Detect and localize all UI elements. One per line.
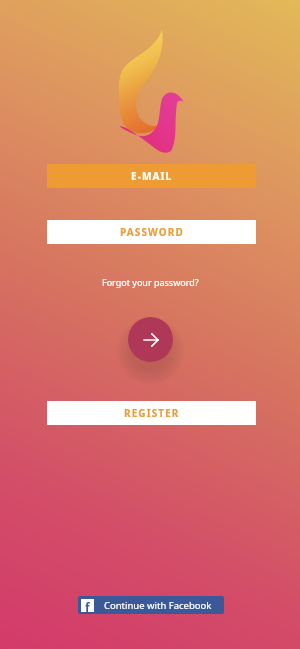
button[interactable]: REGISTER	[47, 401, 256, 425]
staticText: E-MAIL	[131, 169, 173, 183]
button[interactable]: Sign in	[128, 317, 173, 362]
staticText: Continue with Facebook	[104, 599, 212, 612]
button[interactable]: f	[78, 596, 224, 614]
button[interactable]: PASSWORD	[47, 220, 256, 244]
button[interactable]: E-MAIL	[47, 164, 256, 188]
staticText: f	[85, 599, 90, 612]
staticText: Forgot your password?	[102, 276, 199, 288]
staticText: PASSWORD	[120, 225, 184, 239]
button[interactable]: Forgot your password?	[95, 275, 205, 289]
staticText: REGISTER	[124, 406, 180, 420]
